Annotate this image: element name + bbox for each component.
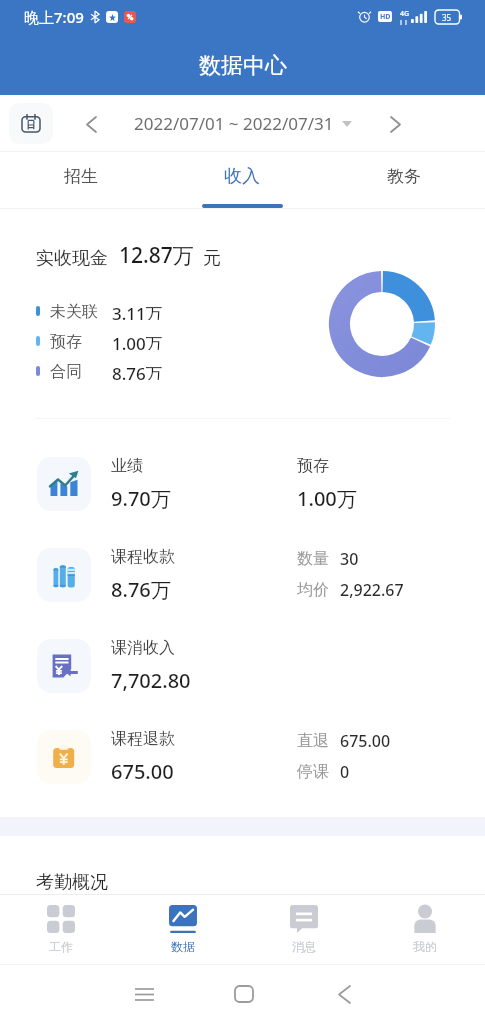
- staticText: 元: [203, 247, 221, 270]
- staticText: 预存: [50, 332, 82, 350]
- staticText: 675.00: [340, 730, 391, 752]
- staticText: 收入: [224, 165, 260, 188]
- button[interactable]: 课程收款: [0, 529, 485, 620]
- staticText: 合同: [50, 362, 82, 380]
- staticText: 数量: [297, 549, 329, 569]
- staticText: HD: [380, 12, 391, 22]
- staticText: 直退: [297, 731, 329, 751]
- staticText: 消息: [292, 939, 316, 954]
- staticText: 招生: [64, 166, 98, 187]
- staticText: 我的: [413, 939, 437, 954]
- staticText: 考勤概况: [36, 871, 108, 894]
- staticText: 35: [442, 12, 452, 23]
- button[interactable]: Next period: [382, 111, 408, 137]
- button[interactable]: 收入: [161, 152, 323, 209]
- staticText: 教务: [387, 166, 421, 187]
- button[interactable]: Previous period: [78, 111, 104, 137]
- staticText: 课程收款: [111, 547, 175, 567]
- staticText: 4G: [400, 9, 410, 19]
- staticText: 停课: [297, 762, 329, 782]
- button[interactable]: 工作: [0, 894, 122, 964]
- button[interactable]: 课消收入: [0, 620, 485, 711]
- button[interactable]: 我的: [364, 894, 485, 964]
- staticText: 均价: [297, 580, 329, 600]
- staticText: 8.76万: [111, 576, 171, 603]
- staticText: 12.87万: [119, 241, 194, 270]
- button[interactable]: Recents: [94, 974, 194, 1014]
- staticText: 课程退款: [111, 729, 175, 749]
- button[interactable]: 招生: [0, 152, 161, 209]
- button[interactable]: 教务: [323, 152, 485, 209]
- staticText: 1.00万: [297, 485, 357, 512]
- staticText: 0: [340, 761, 350, 783]
- staticText: 675.00: [111, 758, 174, 785]
- staticText: 数据: [171, 939, 195, 954]
- staticText: 预存: [297, 456, 329, 476]
- button[interactable]: 2022/07/01 ~ 2022/07/31: [134, 112, 334, 135]
- button[interactable]: 课程退款: [0, 711, 485, 802]
- staticText: 3.11万: [112, 302, 163, 320]
- staticText: 7,702.80: [111, 667, 191, 694]
- button[interactable]: 业绩: [0, 438, 485, 529]
- button[interactable]: Select month: [9, 103, 53, 144]
- staticText: 1.00万: [112, 332, 163, 350]
- staticText: 课消收入: [111, 638, 175, 658]
- button[interactable]: 消息: [243, 894, 364, 964]
- staticText: 工作: [49, 939, 73, 954]
- staticText: 未关联: [50, 302, 98, 320]
- staticText: 2,922.67: [340, 579, 404, 601]
- staticText: 实收现金: [36, 247, 108, 270]
- button[interactable]: Back: [294, 974, 394, 1014]
- staticText: 9.70万: [111, 485, 171, 512]
- staticText: 8.76万: [112, 362, 163, 380]
- staticText: 数据中心: [199, 52, 287, 80]
- button[interactable]: Home: [194, 974, 294, 1014]
- staticText: 晚上7:09: [24, 7, 84, 27]
- staticText: 30: [340, 548, 359, 570]
- staticText: 业绩: [111, 456, 143, 476]
- button[interactable]: 数据: [122, 894, 243, 964]
